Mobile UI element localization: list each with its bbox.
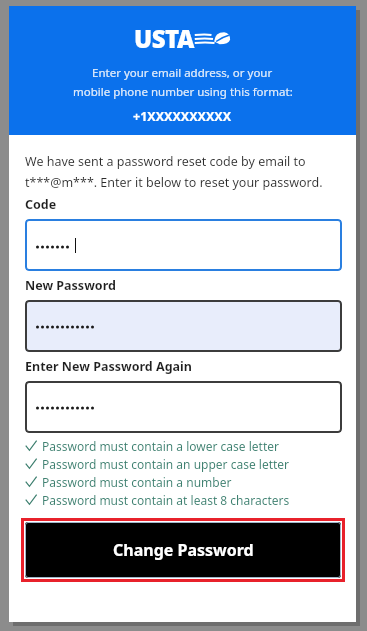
button[interactable]: Change Password <box>25 522 341 578</box>
staticText: New Password <box>25 277 116 294</box>
staticText: USTA <box>134 22 194 55</box>
button[interactable]: New Password <box>25 300 342 352</box>
staticText: Change Password <box>113 539 254 561</box>
staticText: +1XXXXXXXXXX <box>133 108 232 125</box>
staticText: t***@m***. Enter it below to reset your … <box>25 174 323 191</box>
staticText: We have sent a password reset code by em… <box>25 153 306 170</box>
staticText: mobile phone number using this format: <box>73 84 293 100</box>
staticText: Enter your email address, or your <box>92 65 273 81</box>
staticText: Password must contain an upper case lett… <box>42 456 290 472</box>
staticText: Password must contain a lower case lette… <box>42 438 279 454</box>
staticText: Enter New Password Again <box>25 358 192 375</box>
staticText: Code <box>25 196 57 213</box>
button[interactable]: Enter New Password Again <box>25 381 342 433</box>
staticText: Password must contain at least 8 charact… <box>42 492 290 508</box>
button[interactable]: Code <box>25 219 342 271</box>
staticText: Password must contain a number <box>42 474 232 490</box>
